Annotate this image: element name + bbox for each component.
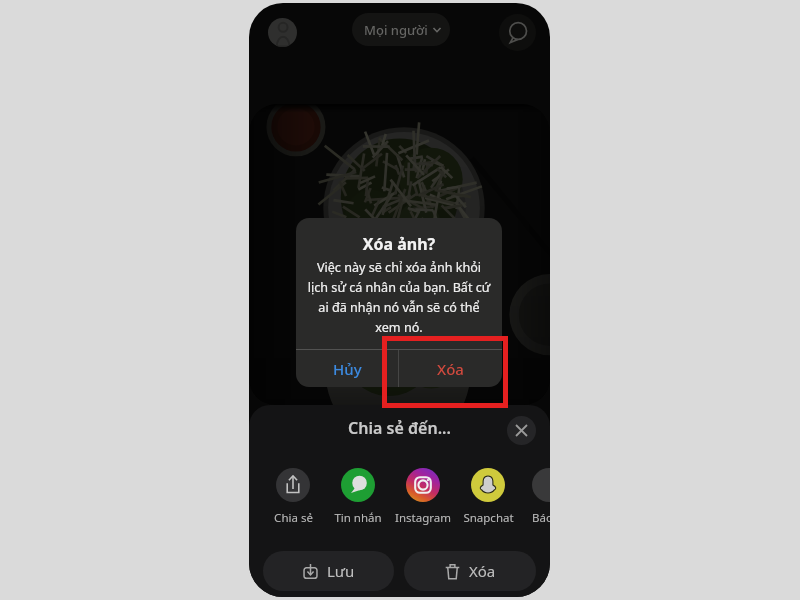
button[interactable]: Profile bbox=[268, 18, 297, 47]
button[interactable]: Lưu bbox=[263, 551, 394, 591]
staticText: Xóa bbox=[469, 561, 496, 581]
button[interactable]: Báo bbox=[532, 468, 550, 526]
button[interactable]: Instagram bbox=[392, 468, 454, 526]
staticText: Xóa ảnh? bbox=[296, 233, 502, 255]
staticText: Snapchat bbox=[463, 510, 514, 526]
button[interactable]: Xóa bbox=[404, 551, 536, 591]
staticText: Chia sẻ bbox=[274, 510, 313, 526]
button[interactable]: Messages bbox=[499, 14, 536, 51]
button[interactable]: Mọi người bbox=[352, 13, 450, 46]
staticText: Chia sẻ đến... bbox=[249, 417, 550, 439]
staticText: Hủy bbox=[333, 359, 362, 379]
staticText: Mọi người bbox=[364, 21, 428, 39]
staticText: Báo bbox=[532, 510, 550, 526]
button[interactable]: Tin nhắn bbox=[327, 468, 389, 526]
staticText: Việc này sẽ chỉ xóa ảnh khỏi lịch sử cá … bbox=[306, 259, 492, 336]
button[interactable]: Hủy bbox=[296, 350, 398, 387]
staticText: Lưu bbox=[327, 561, 355, 581]
staticText: Tin nhắn bbox=[334, 510, 382, 526]
button[interactable]: Close bbox=[507, 416, 536, 445]
button[interactable]: Xóa bbox=[399, 350, 502, 387]
button[interactable]: Snapchat bbox=[457, 468, 519, 526]
staticText: Instagram bbox=[395, 510, 451, 526]
staticText: Xóa bbox=[437, 359, 464, 379]
button[interactable]: Chia sẻ bbox=[262, 468, 324, 526]
